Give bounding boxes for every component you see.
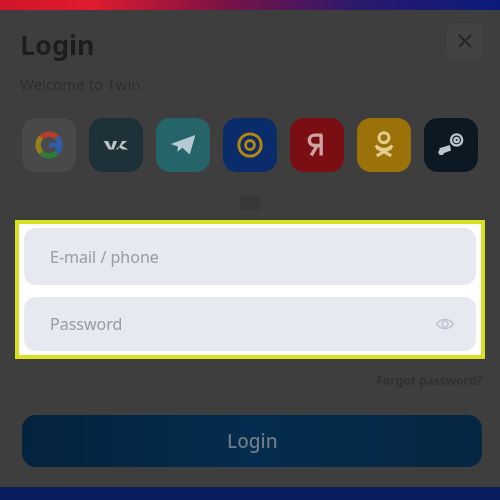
staticText: Login: [20, 26, 95, 63]
button[interactable]: Show password: [432, 311, 458, 337]
button[interactable]: Password: [24, 297, 476, 351]
staticText: Welcome to 1win: [20, 74, 141, 94]
button[interactable]: Sign in with Yandex: [290, 118, 344, 172]
button[interactable]: Sign in with Odnoklassniki: [357, 118, 411, 172]
button[interactable]: Forgot password?: [350, 370, 482, 390]
staticText: Login: [227, 428, 278, 454]
button[interactable]: Sign in with VK: [89, 118, 143, 172]
button[interactable]: Sign in with Mail.ru: [223, 118, 277, 172]
button[interactable]: E-mail / phone: [24, 228, 476, 285]
button[interactable]: Sign in with Steam: [424, 118, 478, 172]
staticText: E-mail / phone: [50, 246, 159, 268]
button[interactable]: Sign in with Telegram: [156, 118, 210, 172]
button[interactable]: Close: [447, 23, 483, 59]
staticText: Password: [50, 313, 123, 335]
button[interactable]: Login: [22, 415, 482, 467]
button[interactable]: Sign in with Google: [22, 118, 76, 172]
staticText: Forgot password?: [376, 372, 482, 388]
